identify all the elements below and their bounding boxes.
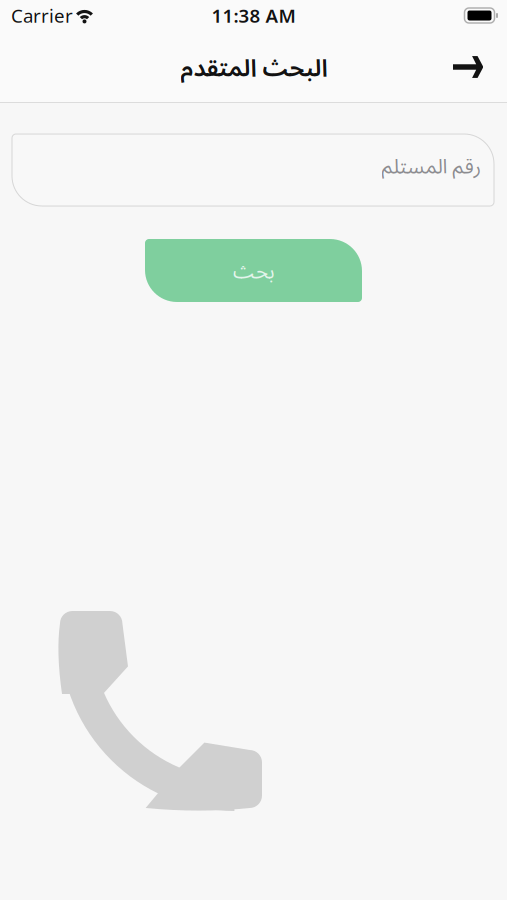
staticText: رقم المستلم xyxy=(381,151,481,179)
button[interactable]: بحث xyxy=(145,239,362,302)
button[interactable]: رقم المستلم xyxy=(12,134,494,206)
staticText: Carrier xyxy=(11,3,73,28)
button[interactable]: Next xyxy=(441,44,495,90)
staticText: 11:38 AM xyxy=(211,3,295,28)
staticText: بحث xyxy=(232,256,274,284)
staticText: البحث المتقدم xyxy=(180,51,327,83)
